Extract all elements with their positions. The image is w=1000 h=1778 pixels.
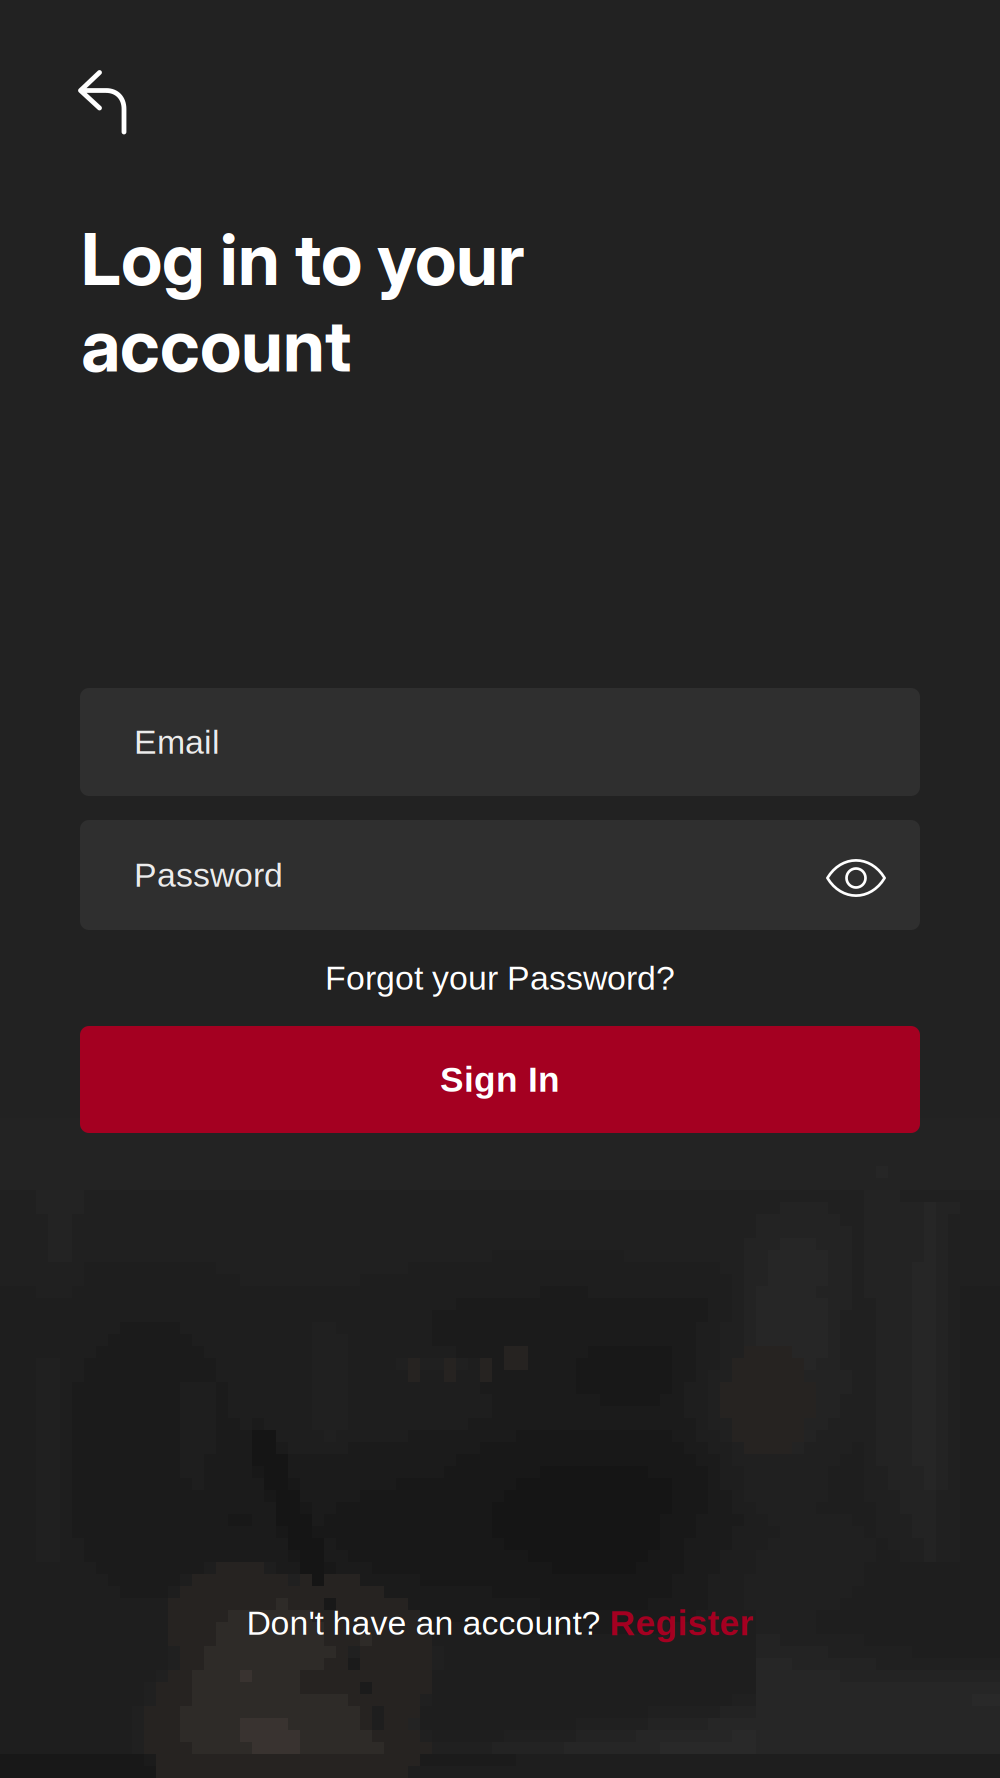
staticText: Don't have an account? [246, 1604, 609, 1642]
button[interactable]: Forgot your Password? [80, 936, 920, 1020]
staticText: Register [609, 1603, 753, 1643]
button[interactable]: Sign In [80, 1026, 920, 1133]
staticText: Sign In [440, 1060, 560, 1099]
staticText: Log in to your [81, 216, 525, 302]
button[interactable]: Don't have an account? [0, 1581, 1000, 1665]
button[interactable]: Password [80, 820, 920, 930]
staticText: Password [134, 856, 283, 894]
button[interactable]: Back [0, 0, 169, 169]
button[interactable]: Email [80, 688, 920, 796]
staticText: Forgot your Password? [325, 959, 675, 997]
staticText: account [81, 302, 351, 389]
staticText: Email [134, 723, 220, 761]
